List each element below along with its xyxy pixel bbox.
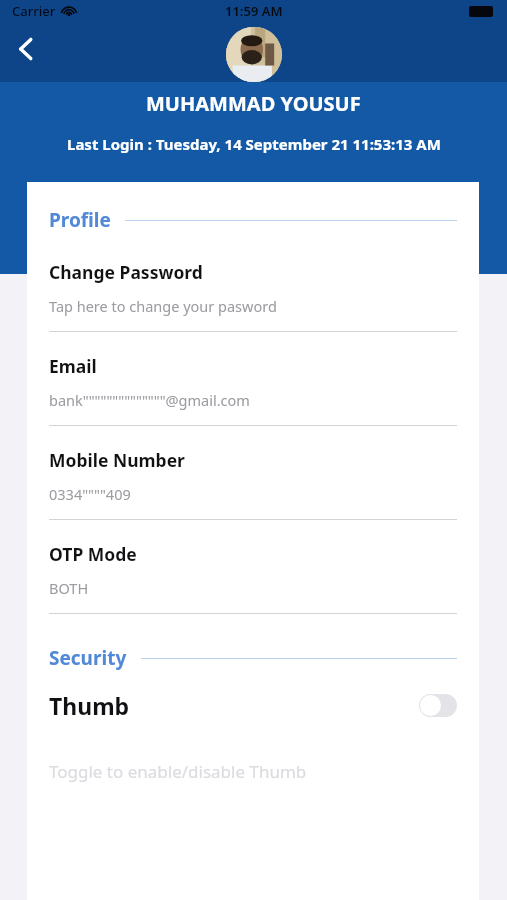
staticText: 11:59 AM (225, 2, 283, 20)
button[interactable]: Mobile Number (49, 426, 457, 520)
button[interactable]: Profile photo (226, 27, 282, 82)
button[interactable]: Change Password (49, 238, 457, 332)
button[interactable]: OTP Mode (49, 520, 457, 614)
staticText: Change Password (49, 260, 203, 284)
staticText: Carrier (12, 2, 56, 20)
staticText: 0334""""409 (49, 484, 131, 504)
staticText: Thumb (49, 690, 130, 721)
button[interactable]: Back (4, 27, 48, 71)
button[interactable]: Toggle Thumb (419, 694, 457, 717)
staticText: bank""""""""""""""@gmail.com (49, 390, 250, 410)
staticText: Toggle to enable/disable Thumb (49, 760, 307, 783)
staticText: Profile (49, 207, 111, 233)
staticText: MUHAMMAD YOUSUF (146, 90, 361, 117)
staticText: Email (49, 354, 97, 378)
staticText: Last Login : Tuesday, 14 September 21 11… (67, 134, 441, 154)
button[interactable]: Email (49, 332, 457, 426)
staticText: BOTH (49, 578, 89, 598)
staticText: Security (49, 645, 127, 671)
staticText: Mobile Number (49, 448, 185, 472)
staticText: Tap here to change your pasword (49, 296, 277, 316)
staticText: OTP Mode (49, 542, 137, 566)
button[interactable]: Thumb (49, 676, 457, 734)
